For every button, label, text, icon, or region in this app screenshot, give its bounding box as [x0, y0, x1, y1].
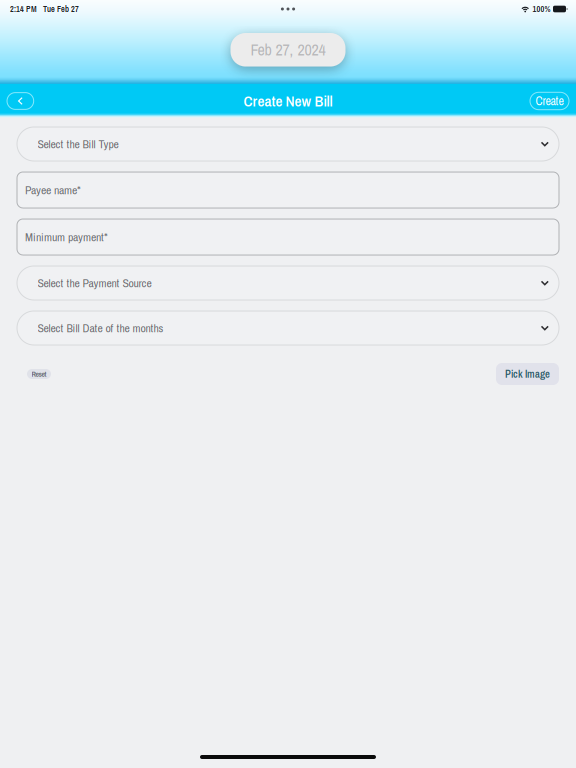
- button[interactable]: Select the Payment Source: [17, 266, 559, 300]
- button[interactable]: Payee name*: [17, 172, 559, 208]
- button[interactable]: Pick Image: [496, 363, 559, 385]
- staticText: Tue Feb 27: [43, 3, 79, 14]
- staticText: Feb 27, 2024: [250, 39, 325, 61]
- staticText: Reset: [31, 369, 46, 379]
- staticText: Create: [535, 93, 563, 109]
- staticText: Create New Bill: [243, 91, 332, 111]
- button[interactable]: Back: [7, 93, 34, 109]
- staticText: Pick Image: [505, 367, 550, 381]
- staticText: 2:14 PM: [10, 3, 37, 14]
- staticText: Select Bill Date of the months: [37, 320, 163, 336]
- staticText: 100%: [532, 3, 550, 14]
- button[interactable]: Reset: [27, 369, 51, 379]
- staticText: Minimum payment*: [25, 229, 108, 245]
- staticText: Payee name*: [25, 182, 81, 198]
- button[interactable]: Create: [530, 92, 569, 110]
- staticText: Select the Payment Source: [37, 275, 151, 291]
- staticText: Select the Bill Type: [37, 136, 118, 152]
- button[interactable]: Select Bill Date of the months: [17, 311, 559, 345]
- button[interactable]: Select the Bill Type: [17, 127, 559, 161]
- button[interactable]: Minimum payment*: [17, 219, 559, 255]
